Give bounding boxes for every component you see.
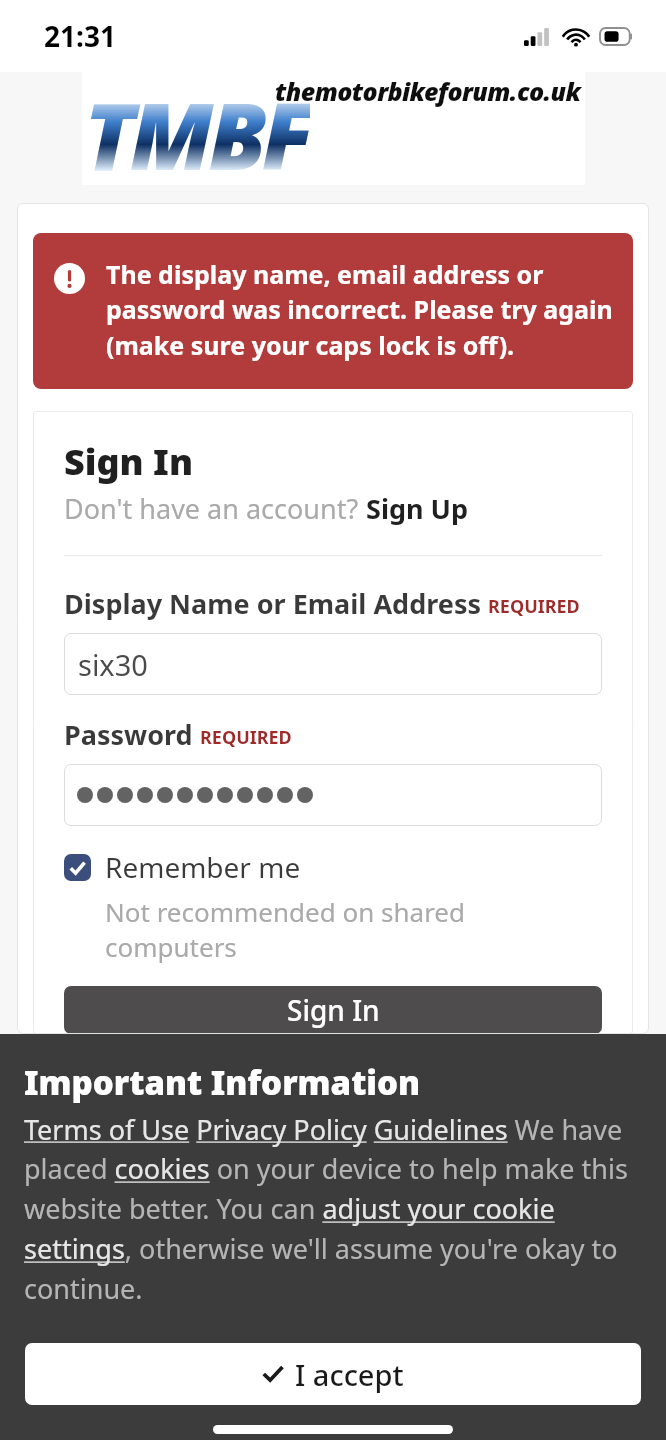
staticText: Sign In	[287, 991, 380, 1029]
staticText: Sign In	[64, 437, 194, 486]
staticText: Not recommended on shared computers	[105, 894, 602, 964]
button[interactable]: I accept	[25, 1343, 641, 1405]
staticText: Password	[64, 716, 193, 753]
other: Error	[54, 263, 85, 294]
staticText: REQUIRED	[200, 725, 292, 750]
staticText: Sign Up	[366, 490, 469, 527]
staticText: Terms of Use Privacy Policy Guidelines W…	[24, 1111, 642, 1307]
staticText: six30	[78, 645, 148, 684]
staticText: REQUIRED	[488, 594, 580, 619]
staticText: I accept	[295, 1355, 404, 1394]
staticText: The display name, email address or passw…	[106, 257, 617, 363]
staticText: Don't have an account?	[64, 490, 366, 527]
staticText: Important Information	[24, 1060, 421, 1105]
staticText: 21:31	[44, 17, 116, 55]
button[interactable]: six30	[64, 633, 602, 695]
button[interactable]: Sign In	[64, 986, 602, 1034]
staticText: themotorbikeforum.co.uk	[275, 74, 581, 108]
button[interactable]: Sign Up	[366, 490, 469, 527]
staticText: Remember me	[105, 848, 301, 886]
button[interactable]: Remember me	[64, 848, 301, 886]
button[interactable]	[64, 764, 602, 826]
staticText: TMBF	[84, 72, 310, 185]
staticText: Display Name or Email Address	[64, 585, 481, 622]
